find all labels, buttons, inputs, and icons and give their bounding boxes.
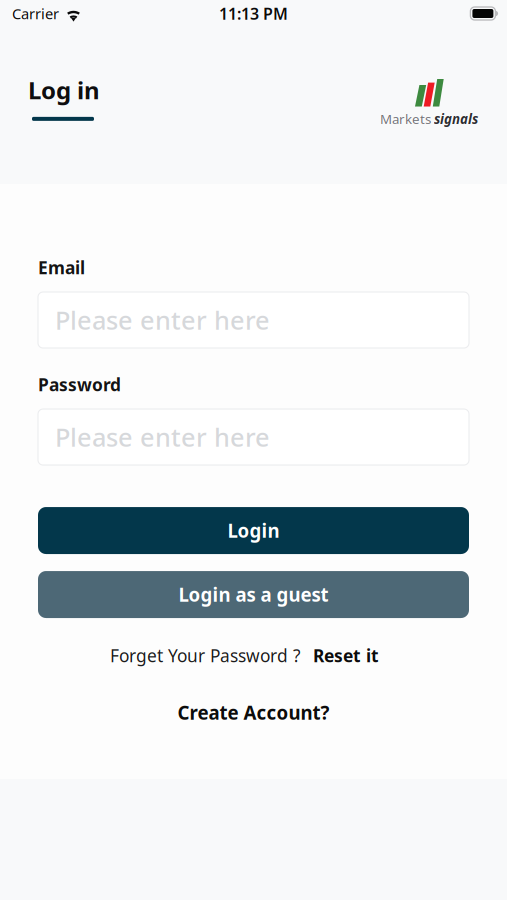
button[interactable]: Login xyxy=(38,507,469,554)
staticText: Email xyxy=(38,256,85,279)
staticText: signals xyxy=(434,110,478,128)
button[interactable]: Please enter here xyxy=(38,409,469,465)
button[interactable]: Create Account? xyxy=(177,700,329,725)
button[interactable]: Reset it xyxy=(313,644,379,667)
staticText: Log in xyxy=(28,74,100,106)
staticText: Login as a guest xyxy=(178,582,328,607)
staticText: Please enter here xyxy=(55,420,270,454)
staticText: Reset it xyxy=(313,644,379,667)
staticText: 11:13 PM xyxy=(219,3,288,24)
button[interactable]: Please enter here xyxy=(38,292,469,348)
staticText: Please enter here xyxy=(55,303,270,337)
staticText: Login xyxy=(227,518,279,543)
staticText: Forget Your Password ? xyxy=(110,644,301,667)
staticText: Password xyxy=(38,373,121,396)
staticText: Carrier xyxy=(12,4,59,23)
button[interactable]: Log in xyxy=(28,74,100,121)
button[interactable]: Login as a guest xyxy=(38,571,469,618)
staticText: Markets xyxy=(380,110,431,128)
staticText: Create Account? xyxy=(177,700,329,725)
